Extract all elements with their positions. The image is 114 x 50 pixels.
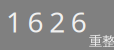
staticText: 重整 — [89, 33, 114, 49]
button[interactable]: 重整 — [89, 33, 114, 49]
staticText: 1626 — [6, 3, 87, 40]
